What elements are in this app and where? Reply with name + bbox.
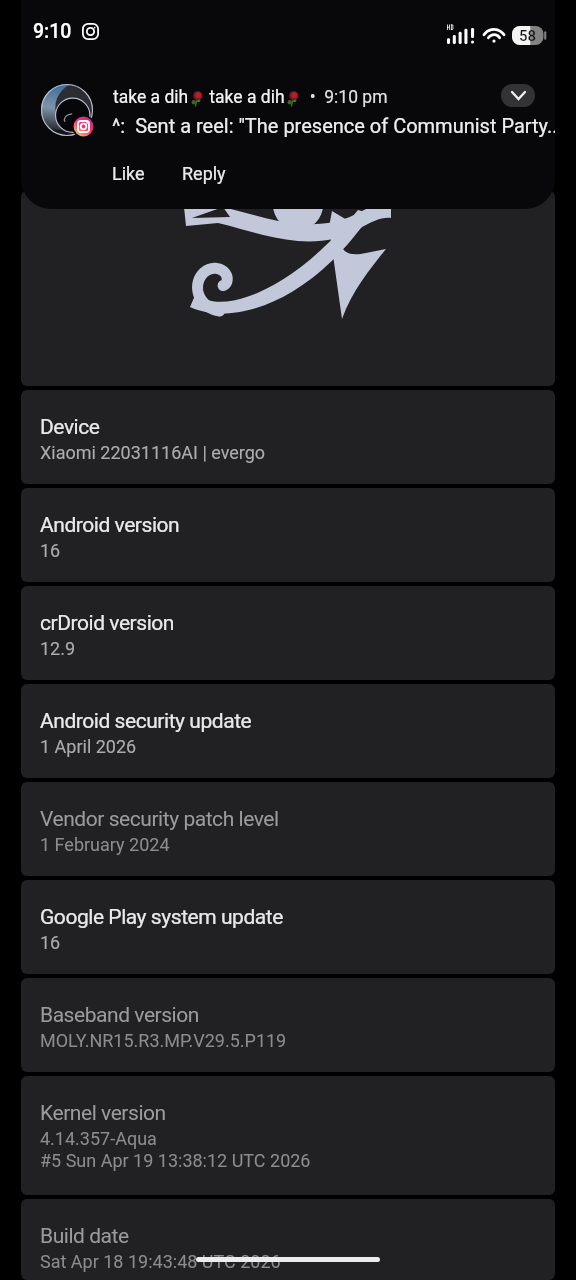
- button[interactable]: Device: [21, 390, 555, 484]
- button[interactable]: Vendor security patch level: [21, 782, 555, 876]
- staticText: Reply: [182, 163, 226, 184]
- staticText: Kernel version: [40, 1101, 166, 1126]
- staticText: Device: [40, 415, 100, 440]
- button[interactable]: [21, 191, 555, 386]
- staticText: Android version: [40, 513, 180, 538]
- button[interactable]: Kernel version: [21, 1076, 555, 1195]
- staticText: 16: [40, 932, 61, 953]
- staticText: Xiaomi 22031116AI | evergo: [40, 442, 266, 463]
- staticText: • 9:10 pm: [301, 87, 388, 108]
- button[interactable]: Android security update: [21, 684, 555, 778]
- button[interactable]: Google Play system update: [21, 880, 555, 974]
- staticText: 1 February 2024: [40, 834, 170, 855]
- button[interactable]: take a dih: [21, 0, 555, 209]
- button[interactable]: Reply: [168, 156, 240, 191]
- staticText: take a dih: [205, 87, 285, 108]
- staticText: 4.14.357-Aqua: [40, 1128, 157, 1149]
- staticText: Like: [112, 163, 145, 184]
- button[interactable]: crDroid version: [21, 586, 555, 680]
- staticText: Baseband version: [40, 1003, 199, 1028]
- staticText: Sat Apr 18 19:43:48 UTC 2026: [40, 1251, 281, 1272]
- staticText: #5 Sun Apr 19 13:38:12 UTC 2026: [40, 1150, 311, 1171]
- staticText: take a dih: [113, 87, 189, 108]
- staticText: Android security update: [40, 709, 252, 734]
- staticText: 58: [519, 27, 537, 45]
- button[interactable]: Baseband version: [21, 978, 555, 1072]
- staticText: crDroid version: [40, 611, 174, 636]
- staticText: Build date: [40, 1224, 129, 1249]
- staticText: Vendor security patch level: [40, 807, 279, 832]
- button[interactable]: Android version: [21, 488, 555, 582]
- button[interactable]: Expand notification: [501, 84, 535, 107]
- staticText: 9:10: [33, 20, 72, 43]
- staticText: MOLY.NR15.R3.MP.V29.5.P119: [40, 1030, 287, 1051]
- staticText: Google Play system update: [40, 905, 283, 930]
- staticText: 12.9: [40, 638, 76, 659]
- button[interactable]: Build date: [21, 1199, 555, 1280]
- button[interactable]: Like: [98, 156, 159, 191]
- staticText: 16: [40, 540, 61, 561]
- staticText: ^: Sent a reel: "The presence of Communi…: [112, 114, 555, 137]
- staticText: 1 April 2026: [40, 736, 137, 757]
